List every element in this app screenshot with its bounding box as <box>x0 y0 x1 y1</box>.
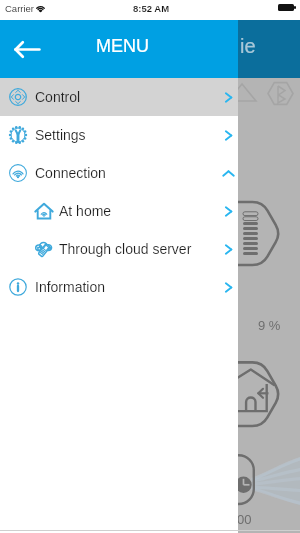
button[interactable]: Through cloud server <box>0 230 238 268</box>
staticText: Carrier <box>5 3 35 14</box>
staticText: 9 % <box>258 318 281 333</box>
button[interactable]: Settings <box>0 116 238 154</box>
button[interactable]: Information <box>0 268 238 306</box>
staticText: Through cloud server <box>59 241 192 257</box>
staticText: 00 <box>237 512 252 527</box>
staticText: Control <box>35 89 81 105</box>
staticText: MENU <box>96 36 149 56</box>
staticText: Connection <box>35 165 106 181</box>
button[interactable]: At home <box>0 192 238 230</box>
button[interactable]: Connection <box>0 154 238 192</box>
button[interactable]: Control <box>0 78 238 116</box>
staticText: ie <box>240 35 256 57</box>
staticText: 8:52 AM <box>133 3 170 14</box>
staticText: Information <box>35 279 106 295</box>
staticText: At home <box>59 203 112 219</box>
button[interactable]: Back <box>4 26 50 72</box>
staticText: Settings <box>35 127 86 143</box>
